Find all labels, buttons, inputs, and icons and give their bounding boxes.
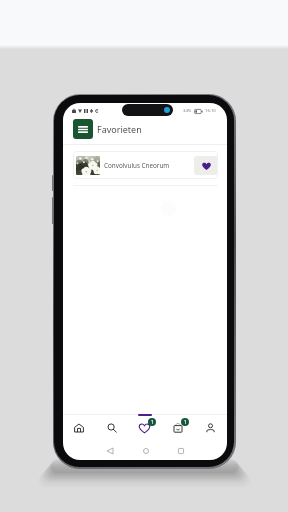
button[interactable]: Cart: [161, 412, 194, 436]
staticText: 1: [184, 419, 187, 426]
button[interactable]: Back: [103, 444, 117, 458]
button[interactable]: Remove from favourites: [194, 156, 218, 175]
button[interactable]: Home: [139, 444, 153, 458]
staticText: 16:10: [205, 108, 216, 114]
button[interactable]: Recent apps: [174, 444, 188, 458]
staticText: 1: [151, 419, 154, 426]
staticText: Favorieten: [97, 123, 142, 135]
button[interactable]: Home: [63, 412, 95, 436]
button[interactable]: Search: [95, 412, 128, 436]
button[interactable]: Convolvulus Cneorum: [73, 151, 218, 179]
button[interactable]: Favourites: [128, 412, 161, 436]
button[interactable]: Account: [194, 412, 227, 436]
staticText: 34%: [183, 108, 192, 114]
staticText: Convolvulus Cneorum: [104, 161, 170, 170]
button[interactable]: Open menu: [73, 119, 93, 139]
